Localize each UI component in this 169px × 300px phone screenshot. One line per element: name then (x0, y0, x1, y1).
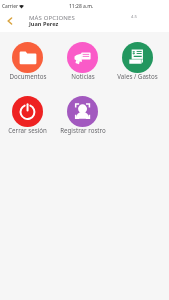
staticText: Documentos (9, 72, 47, 80)
staticText: MÁS OPCIONES (29, 14, 75, 22)
staticText: 4.5 (131, 14, 137, 20)
staticText: Vales / Gastos (117, 72, 158, 80)
button[interactable]: Documentos (0, 42, 55, 81)
staticText: Carrier (2, 3, 18, 10)
button[interactable]: Cerrar sesión (0, 96, 55, 135)
button[interactable]: Vales / Gastos (110, 42, 165, 81)
staticText: 11:28 a.m. (69, 3, 94, 10)
button[interactable]: Registrar rostro (55, 96, 110, 135)
staticText: Cerrar sesión (8, 126, 47, 134)
button[interactable]: Noticias (55, 42, 110, 81)
staticText: Registrar rostro (60, 126, 106, 134)
button[interactable]: Back (1, 12, 19, 30)
staticText: Juan Perez (29, 20, 59, 28)
staticText: Noticias (71, 72, 95, 80)
